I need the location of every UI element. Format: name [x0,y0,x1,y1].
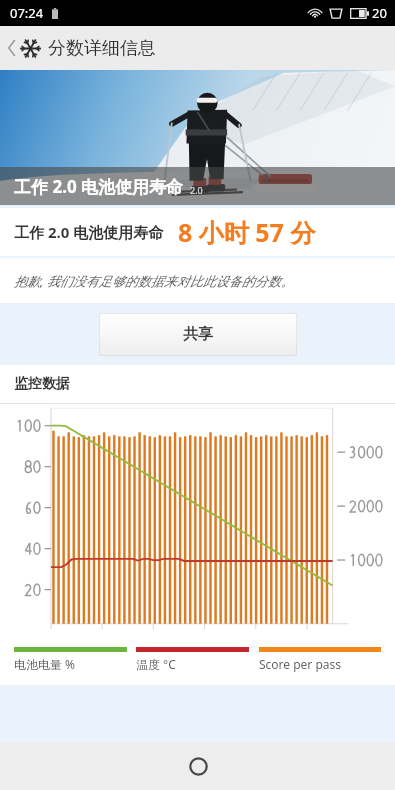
staticText: 2.0 [190,184,203,196]
staticText: 共享 [183,325,213,344]
staticText: 电池电量 % [14,656,76,672]
staticText: 8 小时 57 分 [178,215,316,249]
staticText: 20 [372,4,387,22]
button[interactable]: 共享 [99,313,297,356]
staticText: 工作 2.0 电池使用寿命 [14,175,184,198]
button[interactable]: Home [178,746,218,786]
staticText: 抱歉, 我们没有足够的数据来对比此设备的分数。 [14,272,294,290]
staticText: Score per pass [259,656,342,672]
staticText: 07:24 [10,4,44,22]
staticText: 工作 2.0 电池使用寿命 [14,222,164,242]
button[interactable]: Back [0,35,20,61]
staticText: 温度 °C [136,656,176,672]
staticText: 分数详细信息 [48,37,156,60]
staticText: 监控数据 [14,375,70,393]
